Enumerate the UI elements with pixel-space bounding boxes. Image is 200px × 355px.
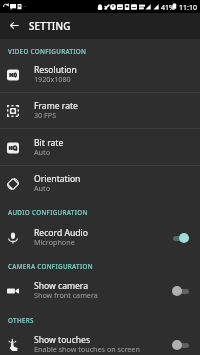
staticText: 30 FPS [34,110,57,120]
staticText: AUDIO CONFIGURATION [8,208,88,217]
staticText: Show front camera [34,290,98,300]
staticText: VIDEO CONFIGURATION [8,47,87,56]
staticText: Resolution [34,64,77,76]
staticText: Frame rate [34,100,78,112]
button[interactable]: Orientation [0,165,200,202]
staticText: 41% [161,3,175,13]
staticText: 11:10 [179,3,197,13]
staticText: OTHERS [8,316,34,325]
button[interactable]: Show touches [0,326,200,355]
button[interactable]: Back [2,13,27,38]
button[interactable]: Record Audio [0,219,200,256]
staticText: Bit rate [34,137,64,149]
staticText: Microphone [34,237,75,247]
staticText: Auto [34,147,50,157]
staticText: CAMERA CONFIGURATION [8,262,93,271]
staticText: Show camera [34,280,89,292]
staticText: Orientation [34,173,81,185]
staticText: Show touches [34,334,91,346]
button[interactable]: Show camera [0,272,200,309]
button[interactable]: Bit rate [0,129,200,166]
staticText: Auto [34,183,50,193]
staticText: Record Audio [34,227,88,239]
button[interactable]: Resolution [0,56,200,93]
staticText: Enable show touches on screen [34,344,140,354]
staticText: ... [22,1,27,9]
staticText: 1920x1080 [34,74,71,84]
button[interactable]: Frame rate [0,92,200,129]
staticText: SETTING [29,20,71,33]
